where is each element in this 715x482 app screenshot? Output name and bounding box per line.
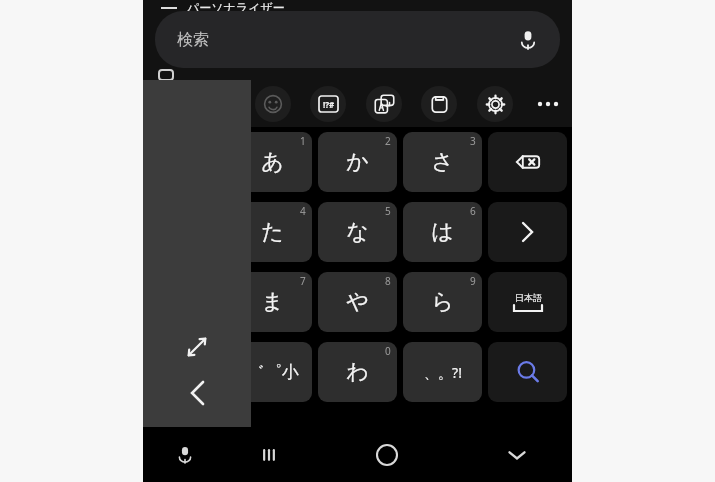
staticText: や	[346, 288, 369, 316]
staticText: 1	[300, 134, 306, 148]
button[interactable]: Back	[175, 371, 219, 415]
staticText: 7	[300, 274, 306, 288]
staticText: 6	[470, 204, 476, 218]
button[interactable]: ゛゜小	[233, 342, 312, 402]
staticText: か	[346, 148, 369, 176]
button[interactable]: Change language	[148, 342, 227, 402]
button[interactable]: ら	[403, 272, 482, 332]
button[interactable]: Resize keyboard	[175, 325, 219, 369]
button[interactable]: Symbols	[310, 86, 346, 122]
button[interactable]: Delete	[488, 132, 567, 192]
button[interactable]: あ	[233, 132, 312, 192]
button[interactable]: な	[318, 202, 397, 262]
button[interactable]: Home	[311, 427, 462, 482]
staticText: わ	[346, 358, 369, 386]
button[interactable]: Move cursor right	[488, 202, 567, 262]
button[interactable]: わ	[318, 342, 397, 402]
button[interactable]: か	[318, 132, 397, 192]
staticText: 4	[300, 204, 306, 218]
staticText: た	[261, 218, 284, 246]
button[interactable]: Clipboard	[421, 86, 457, 122]
button[interactable]: Hide keyboard	[462, 427, 572, 482]
button[interactable]: た	[233, 202, 312, 262]
staticText: ら	[431, 288, 454, 316]
staticText: 3	[470, 134, 476, 148]
button[interactable]: は	[403, 202, 482, 262]
staticText: パーソナライザー	[187, 0, 285, 14]
button[interactable]: Settings	[477, 86, 513, 122]
staticText: ゛゜小	[247, 362, 299, 383]
button[interactable]: Translate	[366, 86, 402, 122]
staticText: 日本語	[515, 292, 542, 303]
staticText: 検索	[177, 30, 209, 50]
button[interactable]: 、。?!	[403, 342, 482, 402]
staticText: さ	[431, 148, 454, 176]
staticText: 8	[385, 274, 391, 288]
staticText: 0	[385, 344, 391, 358]
button[interactable]: 検索	[155, 11, 560, 68]
button[interactable]: さ	[403, 132, 482, 192]
button[interactable]: More options	[532, 88, 564, 120]
button[interactable]: Voice input	[143, 427, 227, 482]
staticText: な	[346, 218, 369, 246]
staticText: !?#	[323, 99, 335, 110]
staticText: は	[431, 218, 454, 246]
staticText: 、。?!	[424, 363, 462, 382]
button[interactable]: ま	[233, 272, 312, 332]
button[interactable]: Voice search	[512, 24, 544, 56]
button[interactable]: や	[318, 272, 397, 332]
staticText: あ	[261, 148, 284, 176]
staticText: ま	[261, 288, 284, 316]
staticText: 5	[385, 204, 391, 218]
button[interactable]: Recent apps	[227, 427, 311, 482]
button[interactable]: Search	[488, 342, 567, 402]
button[interactable]: Emoji	[255, 86, 291, 122]
staticText: 2	[385, 134, 391, 148]
staticText: 9	[470, 274, 476, 288]
button[interactable]: Space	[488, 272, 567, 332]
